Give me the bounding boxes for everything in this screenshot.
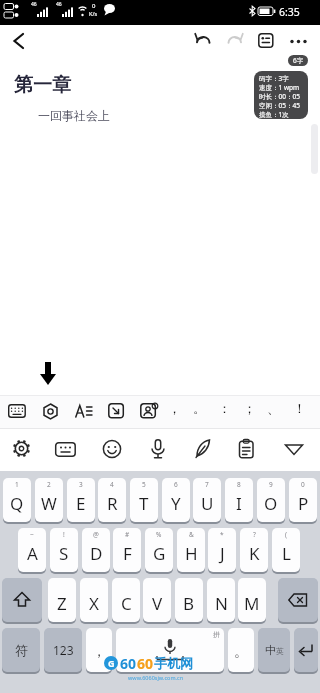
staticText: D <box>90 542 103 565</box>
button[interactable]: ? <box>240 528 268 572</box>
staticText: ， <box>168 400 181 416</box>
staticText: 60 <box>137 654 154 673</box>
staticText: G <box>153 542 166 565</box>
staticText: F <box>123 542 132 565</box>
staticText: 。 <box>234 643 248 661</box>
staticText: Y <box>171 492 181 515</box>
button[interactable] <box>42 403 59 420</box>
button[interactable] <box>284 444 304 456</box>
staticText: E <box>76 492 86 515</box>
staticText: 中 <box>265 643 276 657</box>
button[interactable]: # <box>113 528 141 572</box>
staticText: 英 <box>276 646 284 656</box>
staticText: S <box>59 542 69 565</box>
button[interactable]: ( <box>272 528 300 572</box>
button[interactable]: N <box>207 578 235 622</box>
staticText: T <box>139 492 149 515</box>
button[interactable]: 4 <box>98 478 126 522</box>
staticText: & <box>189 530 194 539</box>
staticText: 摸鱼：1次 <box>259 110 289 119</box>
staticText: 123 <box>53 642 74 658</box>
button[interactable]: 5 <box>130 478 158 522</box>
button[interactable] <box>226 32 243 49</box>
staticText: C <box>121 592 132 615</box>
staticText: ~ <box>30 530 34 539</box>
button[interactable] <box>102 439 122 459</box>
button[interactable]: 3 <box>67 478 95 522</box>
button[interactable] <box>258 33 274 49</box>
button[interactable]: 。 <box>228 628 254 672</box>
button[interactable]: X <box>80 578 108 622</box>
button[interactable] <box>55 442 76 457</box>
staticText: M <box>244 592 260 615</box>
button[interactable] <box>8 404 26 419</box>
staticText: 7 <box>205 480 209 489</box>
button[interactable]: 符 <box>2 628 40 672</box>
button[interactable]: 9 <box>257 478 285 522</box>
button[interactable]: V <box>143 578 171 622</box>
staticText: % <box>156 530 162 539</box>
button[interactable] <box>194 439 212 459</box>
button[interactable]: * <box>208 528 236 572</box>
button[interactable] <box>289 33 309 49</box>
button[interactable]: ! <box>50 528 78 572</box>
button[interactable]: % <box>145 528 173 572</box>
staticText: H <box>185 542 198 565</box>
button[interactable]: 拼 <box>116 628 224 672</box>
staticText: R <box>107 492 118 515</box>
staticText: @ <box>93 530 99 539</box>
staticText: Z <box>57 592 67 615</box>
staticText: K <box>249 542 260 565</box>
staticText: ! <box>63 530 65 539</box>
button[interactable] <box>238 439 255 459</box>
staticText: 。 <box>193 400 206 416</box>
staticText: 时长：00：05 <box>259 92 300 101</box>
button[interactable]: 2 <box>35 478 63 522</box>
button[interactable]: ， <box>86 628 112 672</box>
button[interactable] <box>75 404 93 419</box>
button[interactable]: 中 <box>258 628 290 672</box>
staticText: 1 <box>15 480 19 489</box>
button[interactable]: 6 <box>162 478 190 522</box>
button[interactable] <box>12 439 31 458</box>
button[interactable]: Z <box>48 578 76 622</box>
button[interactable]: M <box>238 578 266 622</box>
button[interactable] <box>195 32 212 49</box>
button[interactable] <box>140 403 158 419</box>
staticText: I <box>236 492 242 515</box>
staticText: 空闲：05：45 <box>259 101 300 110</box>
staticText: K/s <box>89 10 98 17</box>
button[interactable]: 8 <box>225 478 253 522</box>
button[interactable]: 123 <box>44 628 82 672</box>
button[interactable] <box>278 578 318 622</box>
staticText: V <box>152 592 163 615</box>
button[interactable] <box>6 25 38 57</box>
staticText: www.6060sjw.com.cn <box>128 674 184 681</box>
staticText: 符 <box>15 642 28 658</box>
button[interactable]: 0 <box>289 478 317 522</box>
button[interactable]: C <box>112 578 140 622</box>
button[interactable] <box>149 439 167 459</box>
button[interactable]: @ <box>82 528 110 572</box>
staticText: B <box>183 592 195 615</box>
staticText: 5 <box>142 480 146 489</box>
staticText: 手机网 <box>154 655 193 671</box>
button[interactable]: 7 <box>193 478 221 522</box>
staticText: 6字 <box>293 56 304 65</box>
button[interactable] <box>294 628 318 672</box>
button[interactable] <box>108 403 125 419</box>
staticText: 9 <box>269 480 273 489</box>
button[interactable]: ~ <box>18 528 46 572</box>
staticText: ? <box>253 530 256 539</box>
staticText: 0 <box>301 480 305 489</box>
staticText: ( <box>285 530 287 539</box>
button[interactable]: 1 <box>3 478 31 522</box>
staticText: * <box>220 530 224 539</box>
staticText: 60 <box>120 654 137 673</box>
button[interactable]: & <box>177 528 205 572</box>
staticText: U <box>201 492 214 515</box>
button[interactable]: B <box>175 578 203 622</box>
staticText: 8 <box>237 480 241 489</box>
button[interactable] <box>2 578 42 622</box>
staticText: ， <box>92 643 106 661</box>
